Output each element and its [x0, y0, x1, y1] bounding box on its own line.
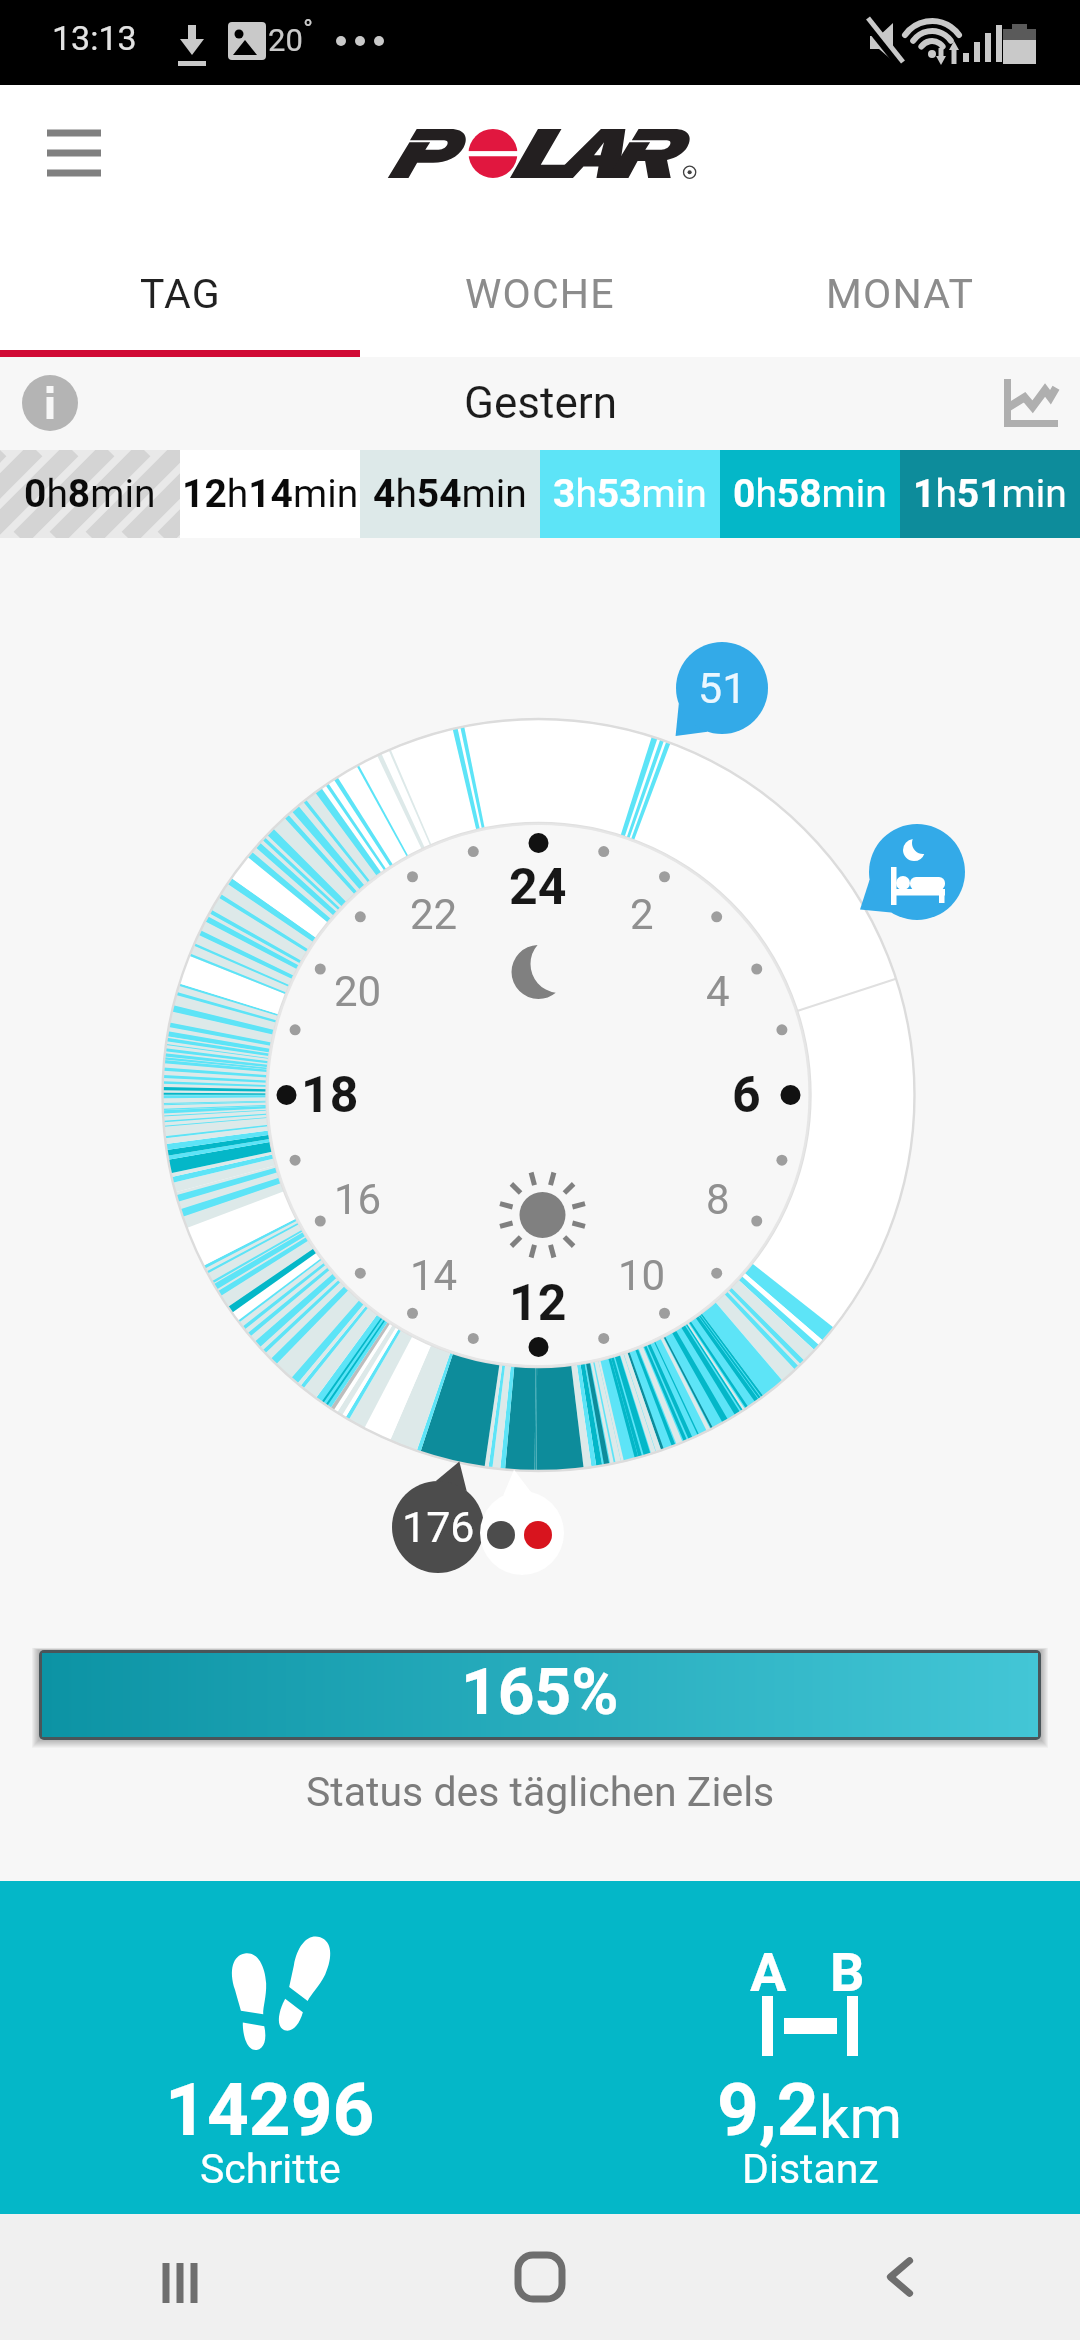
staticText: Gestern: [464, 377, 617, 429]
staticText: Distanz: [742, 2145, 879, 2193]
staticText: 20: [268, 22, 303, 58]
staticText: 1h51min: [913, 471, 1067, 517]
button[interactable]: TAG: [0, 229, 360, 357]
staticText: 8: [706, 1175, 730, 1224]
staticText: 16: [334, 1175, 382, 1224]
button[interactable]: Back: [720, 2214, 1080, 2340]
staticText: 9,2: [717, 2067, 819, 2153]
button[interactable]: 4h54min: [360, 450, 540, 538]
staticText: B: [830, 1941, 865, 2004]
staticText: 6: [732, 1066, 761, 1125]
staticText: A: [750, 1941, 787, 2004]
button[interactable]: Menu: [40, 123, 108, 181]
staticText: 18: [301, 1066, 359, 1125]
staticText: 14296: [165, 2067, 375, 2153]
staticText: 51: [698, 663, 747, 713]
button[interactable]: MONAT: [720, 229, 1080, 357]
staticText: 12: [509, 1274, 567, 1333]
staticText: 22: [410, 890, 458, 939]
button[interactable]: Recent apps: [0, 2214, 360, 2340]
button[interactable]: Chart: [1004, 379, 1058, 427]
staticText: 3h53min: [553, 471, 707, 517]
staticText: Status des täglichen Ziels: [306, 1768, 775, 1816]
button[interactable]: 165%: [39, 1650, 1041, 1740]
button[interactable]: 14296: [0, 1881, 540, 2214]
staticText: Schritte: [200, 2145, 341, 2193]
staticText: 2: [630, 890, 654, 939]
staticText: TAG: [140, 270, 221, 318]
staticText: 4h54min: [373, 471, 527, 517]
staticText: 10: [618, 1251, 666, 1300]
staticText: 165%: [461, 1655, 619, 1730]
staticText: WOCHE: [465, 270, 615, 318]
staticText: 12h14min: [182, 471, 359, 517]
button[interactable]: 3h53min: [540, 450, 720, 538]
staticText: MONAT: [826, 270, 975, 318]
staticText: °: [303, 14, 314, 46]
staticText: km: [819, 2082, 903, 2152]
button[interactable]: A: [540, 1881, 1080, 2214]
staticText: 13:13: [52, 18, 137, 58]
button[interactable]: Home: [360, 2214, 720, 2340]
staticText: 20: [334, 967, 382, 1016]
staticText: 176: [402, 1502, 475, 1552]
button[interactable]: Info: [22, 375, 78, 431]
staticText: 4: [706, 967, 730, 1016]
button[interactable]: 0h58min: [720, 450, 900, 538]
button[interactable]: 0h8min: [0, 450, 180, 538]
button[interactable]: WOCHE: [360, 229, 720, 357]
staticText: 0h8min: [24, 471, 156, 517]
button[interactable]: 12h14min: [180, 450, 360, 538]
staticText: 24: [509, 858, 567, 917]
staticText: 14: [410, 1251, 458, 1300]
staticText: 0h58min: [733, 471, 887, 517]
button[interactable]: 1h51min: [900, 450, 1080, 538]
